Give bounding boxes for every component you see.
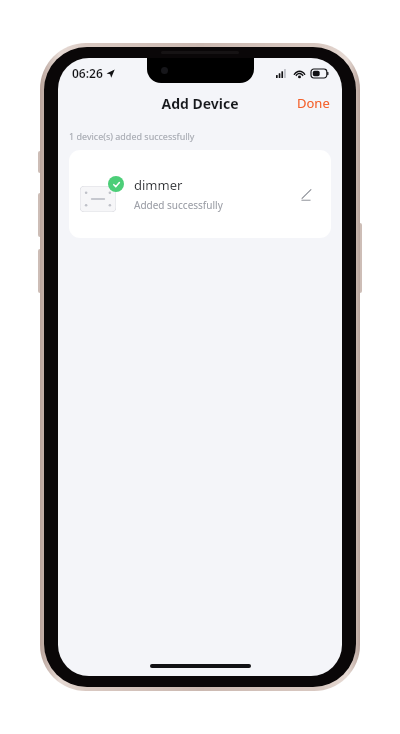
staticText: Done (297, 94, 330, 112)
staticText: Add Device (161, 94, 239, 113)
button[interactable]: dimmer (69, 150, 331, 238)
staticText: 06:26 (72, 65, 103, 81)
staticText: Added successfully (134, 198, 223, 212)
staticText: dimmer (134, 176, 183, 194)
button[interactable]: Done (285, 88, 342, 118)
button[interactable]: Rename device (293, 181, 319, 207)
staticText: 1 device(s) added successfully (69, 130, 195, 142)
